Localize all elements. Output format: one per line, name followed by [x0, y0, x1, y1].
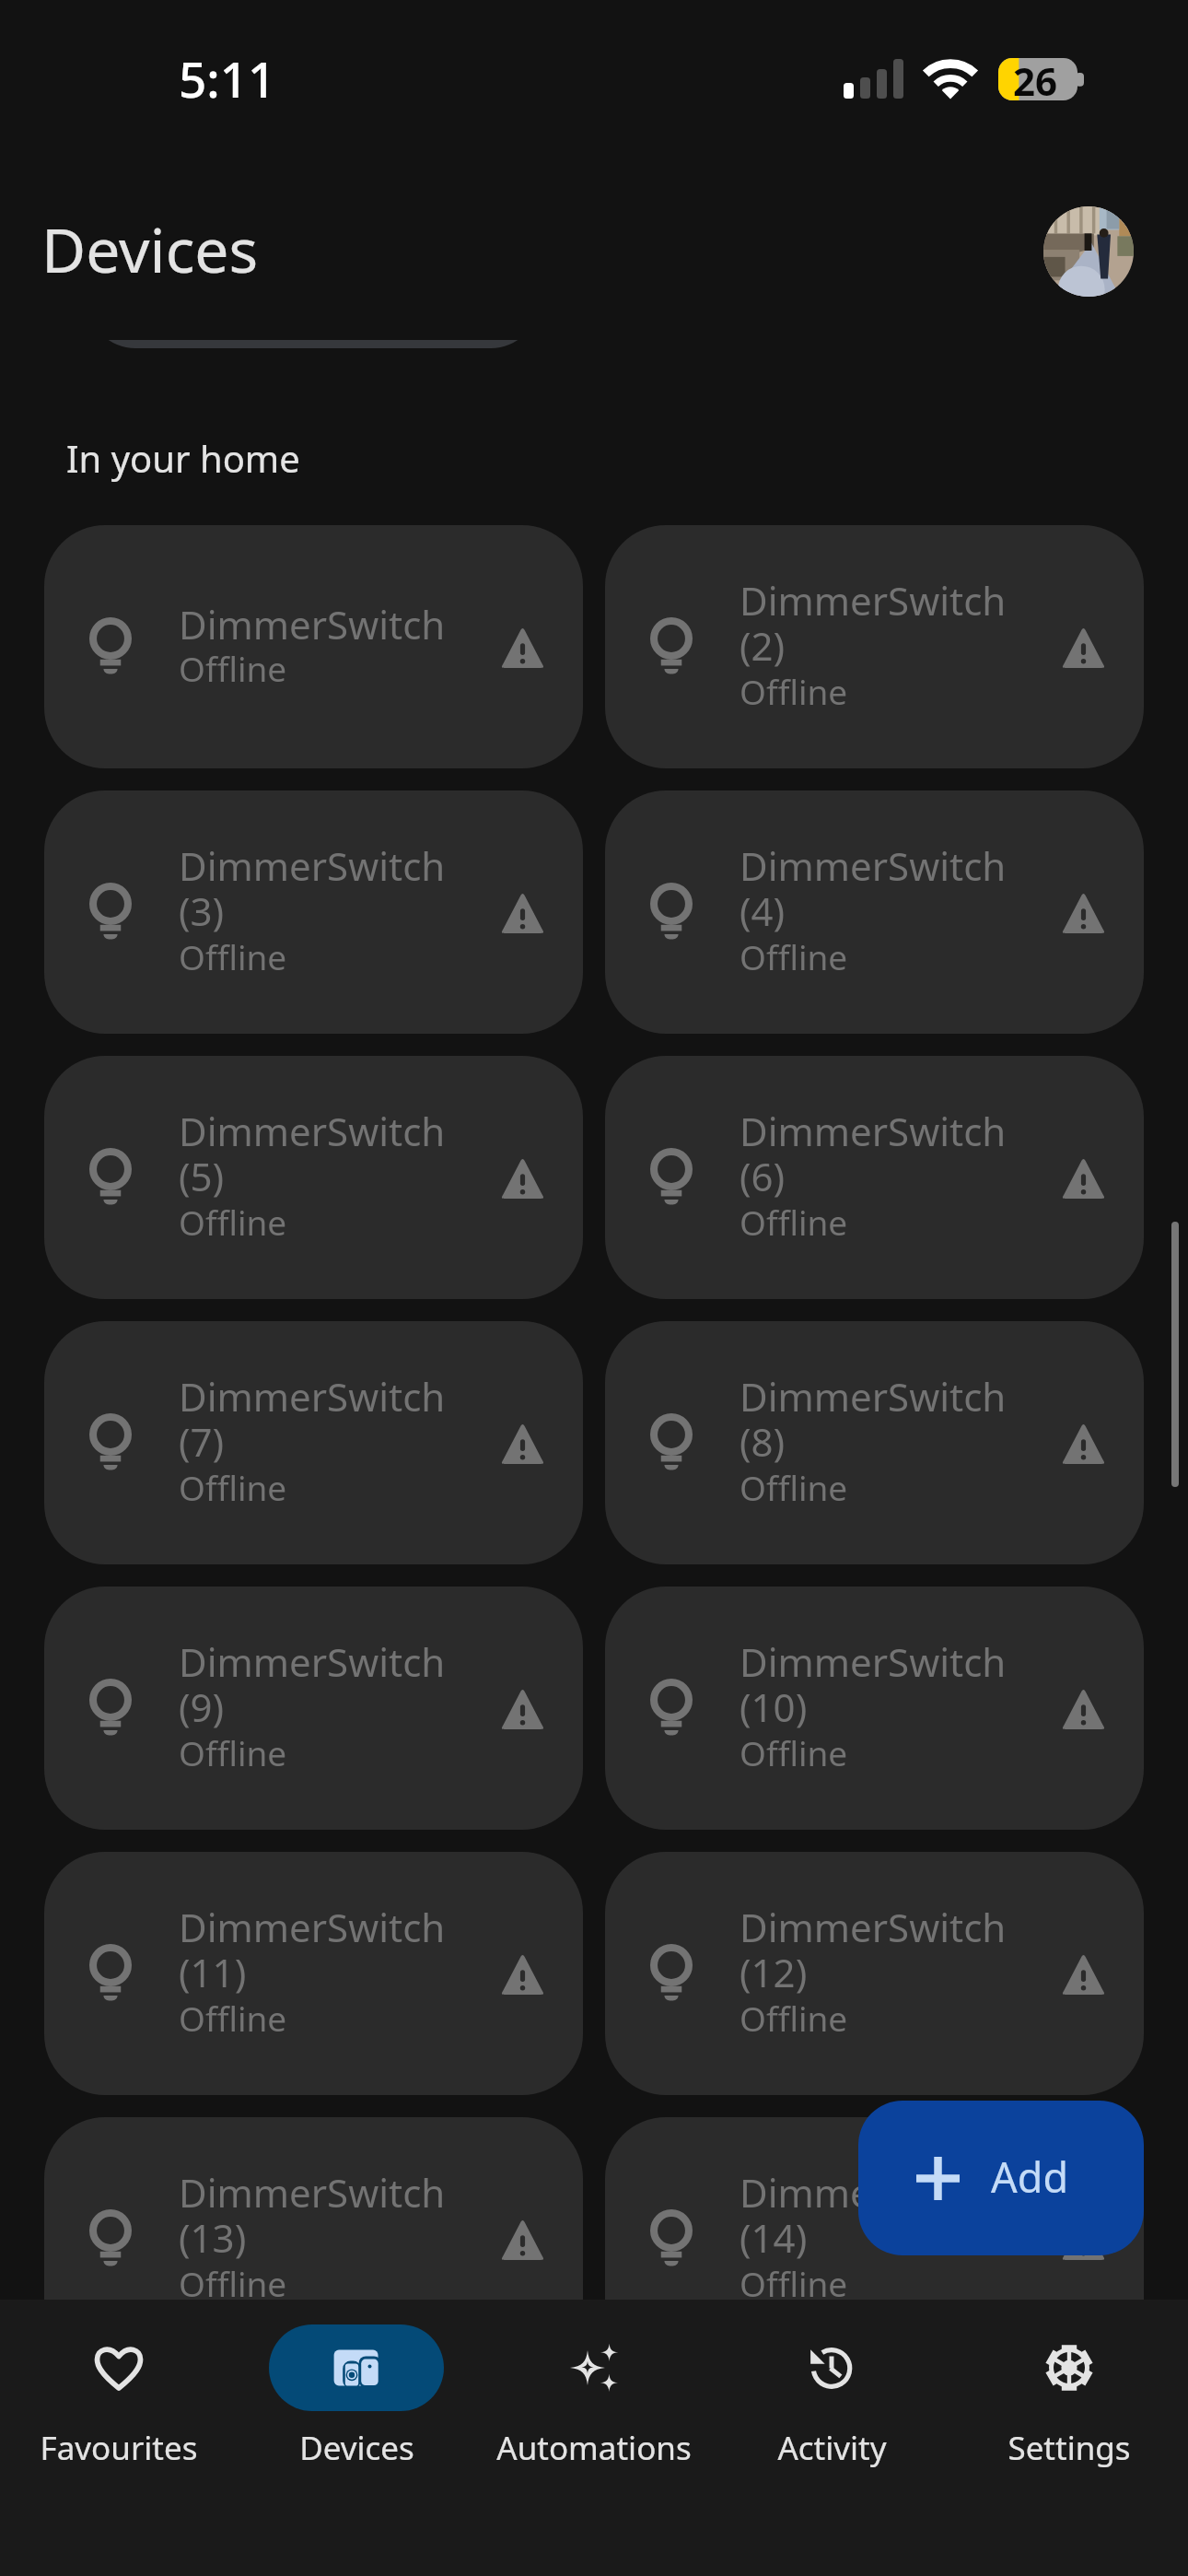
button[interactable]: Devices	[238, 2300, 475, 2488]
button[interactable]: DimmerSwitch	[44, 2117, 583, 2360]
button[interactable]: Account	[1043, 206, 1134, 297]
button[interactable]: DimmerSwitch	[605, 1056, 1144, 1299]
staticText: Offline	[179, 933, 287, 979]
staticText: Devices	[299, 2426, 414, 2470]
staticText: Offline	[179, 1464, 287, 1510]
button[interactable]: Settings	[950, 2300, 1188, 2488]
staticText: Offline	[179, 1199, 287, 1245]
staticText: DimmerSwitch	[179, 598, 446, 650]
staticText: (4)	[740, 884, 786, 937]
staticText: (5)	[179, 1150, 225, 1202]
staticText: Offline	[740, 933, 848, 979]
staticText: In your home	[66, 433, 300, 483]
button[interactable]: DimmerSwitch	[44, 1852, 583, 2095]
staticText: (10)	[740, 1680, 808, 1733]
staticText: DimmerSwitch	[179, 839, 446, 892]
staticText: DimmerSwitch	[740, 1370, 1007, 1423]
staticText: Offline	[179, 2260, 287, 2306]
staticText: Favourites	[40, 2426, 198, 2470]
staticText: Add	[991, 2149, 1069, 2205]
staticText: Automations	[496, 2426, 692, 2470]
button[interactable]: DimmerSwitch	[605, 790, 1144, 1034]
staticText: Offline	[179, 645, 287, 691]
button[interactable]: Activity	[713, 2300, 950, 2488]
staticText: DimmerSwitch	[179, 1105, 446, 1157]
button[interactable]: DimmerSwitch	[44, 1587, 583, 1830]
staticText: Devices	[41, 207, 259, 290]
staticText: Offline	[179, 1729, 287, 1775]
staticText: (12)	[740, 1946, 808, 1998]
staticText: (6)	[740, 1150, 786, 1202]
staticText: Offline	[740, 668, 848, 714]
button[interactable]: DimmerSwitch	[605, 525, 1144, 768]
button[interactable]: DimmerSwitch	[44, 790, 583, 1034]
button[interactable]: DimmerSwitch	[605, 1852, 1144, 2095]
staticText: (8)	[740, 1415, 786, 1468]
button[interactable]: DimmerSwitch	[44, 525, 583, 768]
staticText: Offline	[740, 1995, 848, 2041]
button[interactable]: Favourites	[0, 2300, 238, 2488]
button[interactable]: DimmerSwitch	[44, 1321, 583, 1564]
staticText: DimmerSwitch	[740, 574, 1007, 626]
staticText: DimmerSwitch	[179, 2166, 446, 2219]
button[interactable]: DimmerSwitch	[605, 1587, 1144, 1830]
staticText: DimmerSwitch	[179, 1370, 446, 1423]
staticText: (9)	[179, 1680, 225, 1733]
staticText: Offline	[740, 1464, 848, 1510]
staticText: DimmerSwitch	[179, 1635, 446, 1688]
staticText: (14)	[740, 2211, 808, 2264]
staticText: Settings	[1007, 2426, 1131, 2470]
staticText: Offline	[740, 1729, 848, 1775]
button[interactable]: Automations	[475, 2300, 713, 2488]
staticText: DimmerSwitch	[740, 1105, 1007, 1157]
staticText: (3)	[179, 884, 225, 937]
button[interactable]: DimmerSwitch	[605, 2117, 1144, 2360]
staticText: Offline	[740, 2260, 848, 2306]
staticText: DimmerSwitch	[740, 1635, 1007, 1688]
button[interactable]: DimmerSwitch	[44, 1056, 583, 1299]
staticText: DimmerSwitch	[179, 1901, 446, 1953]
button[interactable]: Add	[858, 2101, 1144, 2255]
staticText: (11)	[179, 1946, 247, 1998]
staticText: 26	[1013, 54, 1058, 97]
staticText: (13)	[179, 2211, 247, 2264]
staticText: DimmerSwitch	[740, 1901, 1007, 1953]
staticText: (7)	[179, 1415, 225, 1468]
staticText: Activity	[777, 2426, 887, 2470]
staticText: Offline	[740, 1199, 848, 1245]
staticText: (2)	[740, 619, 786, 672]
staticText: DimmerSwitch	[740, 839, 1007, 892]
staticText: DimmerSwitch	[740, 2166, 1007, 2219]
staticText: Offline	[179, 1995, 287, 2041]
staticText: 5:11	[179, 45, 276, 111]
button[interactable]: DimmerSwitch	[605, 1321, 1144, 1564]
